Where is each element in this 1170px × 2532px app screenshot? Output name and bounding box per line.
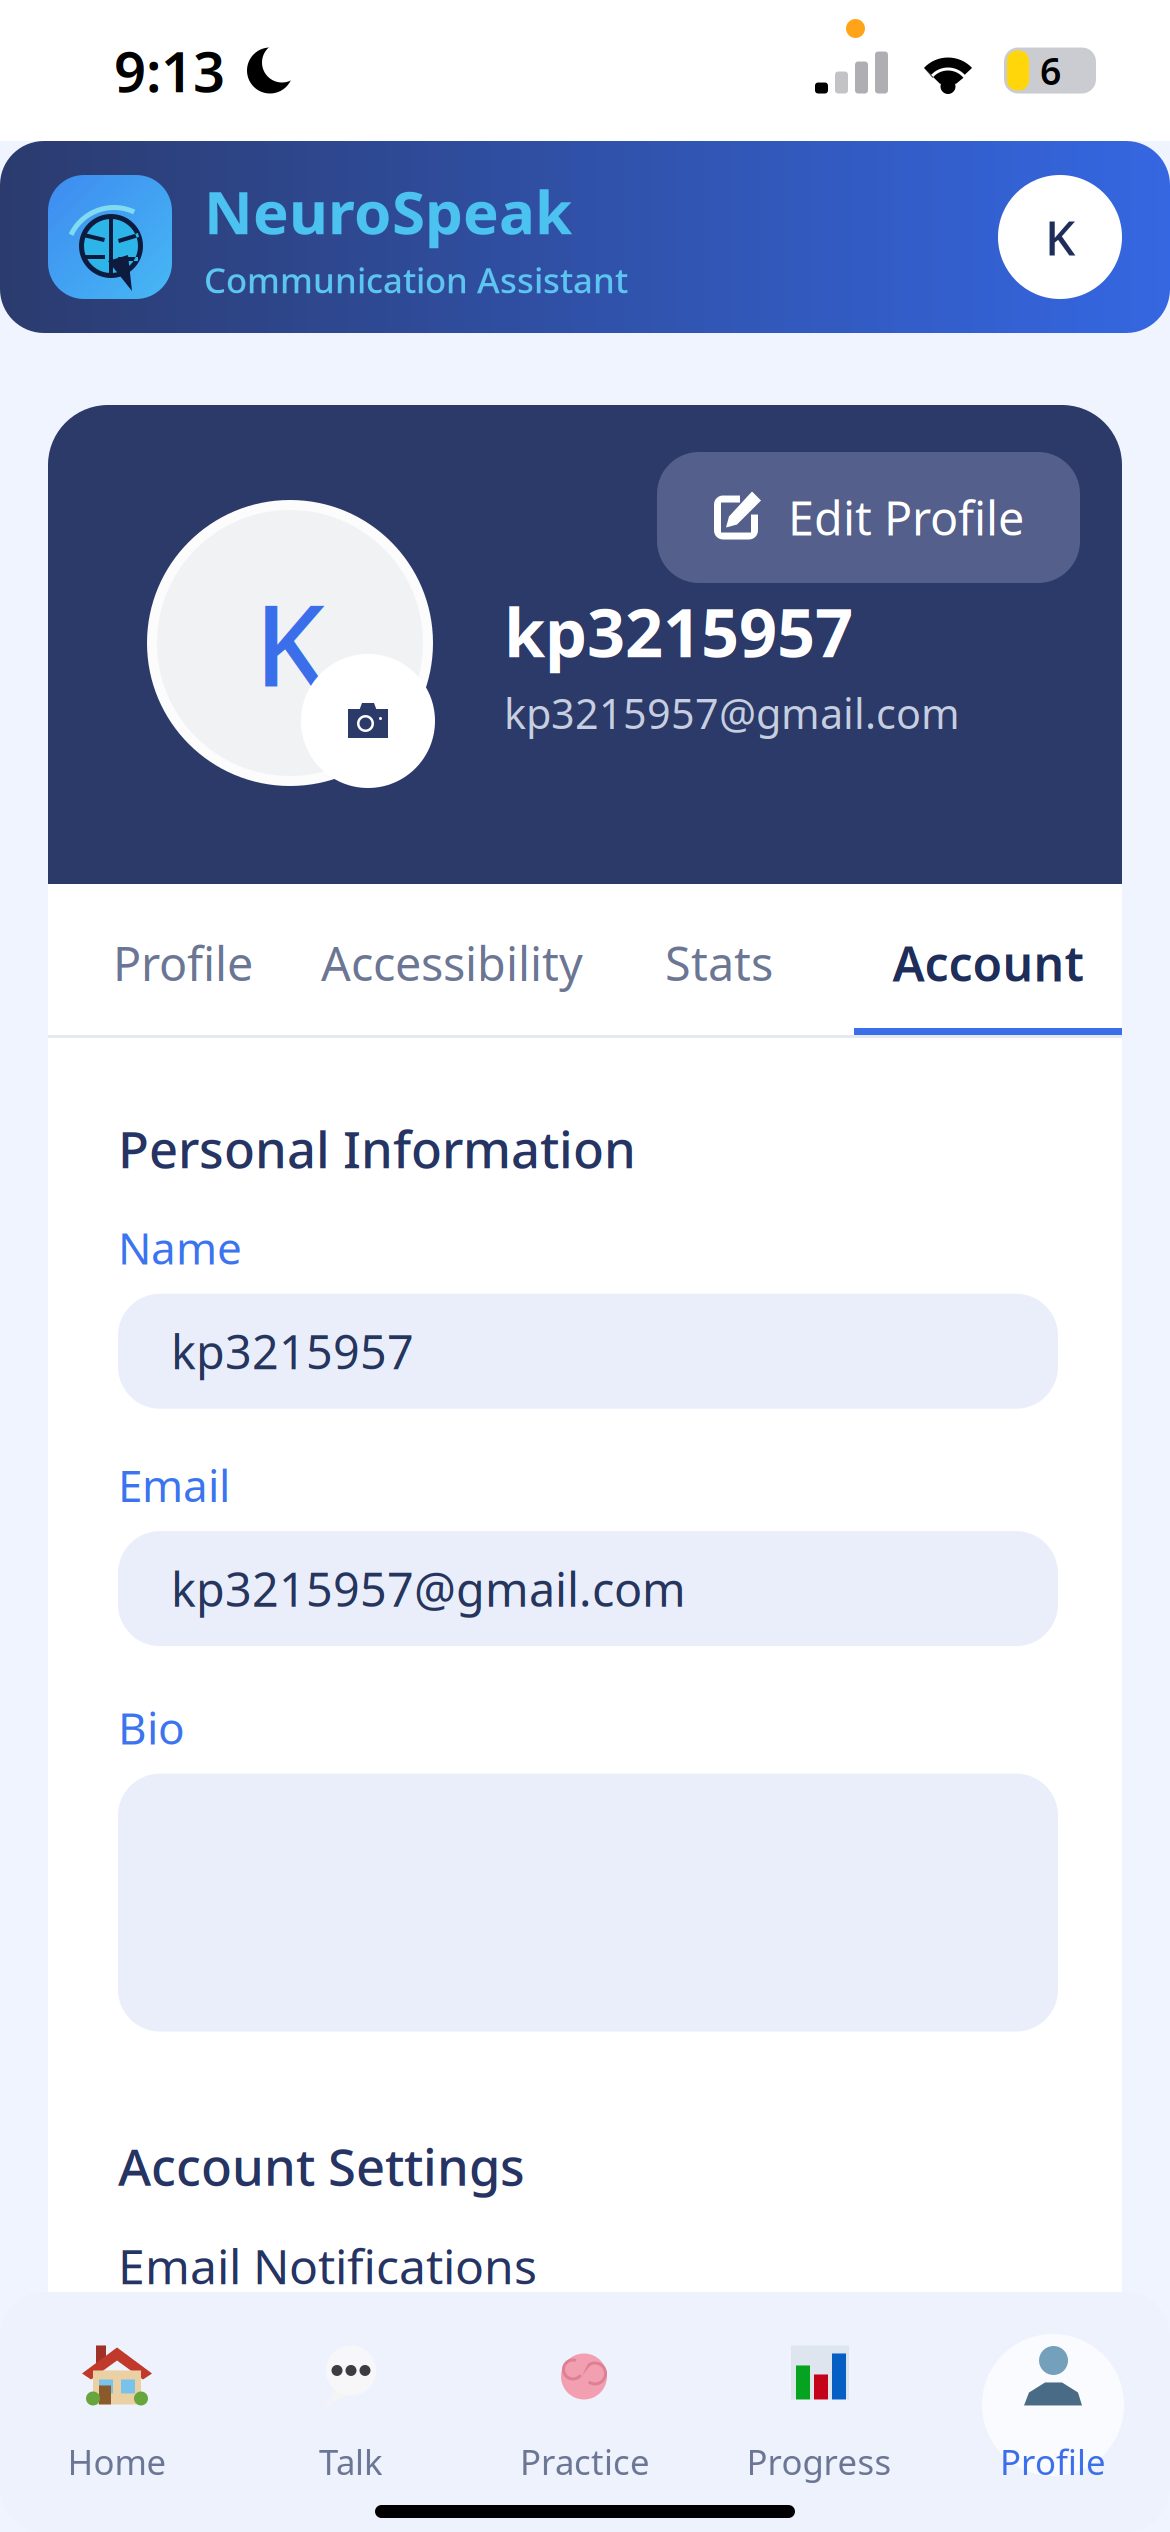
staticText: Edit Profile [788, 486, 1024, 548]
button[interactable]: Account [854, 884, 1122, 1042]
button[interactable]: Profile [81, 884, 285, 1042]
staticText: Profile [1000, 2438, 1106, 2484]
staticText: Profile [113, 932, 253, 994]
staticText: Account Settings [118, 2133, 525, 2200]
staticText: kp3215957@gmail.com [504, 685, 960, 740]
staticText: Account [892, 931, 1083, 995]
staticText: K [1045, 205, 1075, 269]
staticText: Accessibility [321, 932, 583, 994]
button[interactable]: Change profile photo [301, 654, 435, 788]
staticText: kp3215957@gmail.com [171, 1558, 686, 1620]
staticText: Bio [118, 1698, 185, 1756]
staticText: 6 [1040, 46, 1061, 95]
staticText: 9:13 [114, 33, 225, 108]
button[interactable]: Progress [702, 2336, 936, 2486]
staticText: Talk [319, 2438, 383, 2484]
staticText: kp3215957 [171, 1320, 414, 1382]
button[interactable]: Stats [619, 884, 819, 1042]
button[interactable]: Talk [234, 2336, 468, 2486]
staticText: Email Notifications [118, 2234, 537, 2298]
staticText: NeuroSpeak [204, 171, 572, 251]
staticText: kp3215957 [504, 587, 853, 675]
staticText: Home [67, 2438, 166, 2484]
button[interactable]: Accessibility [285, 884, 619, 1042]
staticText: Practice [520, 2438, 650, 2484]
button[interactable]: Edit Profile [657, 452, 1080, 583]
staticText: Name [118, 1218, 242, 1277]
button[interactable]: Profile [936, 2336, 1170, 2486]
staticText: Stats [665, 932, 773, 994]
staticText: Progress [746, 2438, 891, 2484]
button[interactable]: Account menu [998, 175, 1122, 299]
staticText: K [254, 569, 325, 717]
staticText: Personal Information [118, 1115, 636, 1182]
button[interactable]: Home [0, 2336, 234, 2486]
staticText: Email [118, 1456, 230, 1514]
staticText: Communication Assistant [204, 257, 628, 303]
button[interactable]: Practice [468, 2336, 702, 2486]
